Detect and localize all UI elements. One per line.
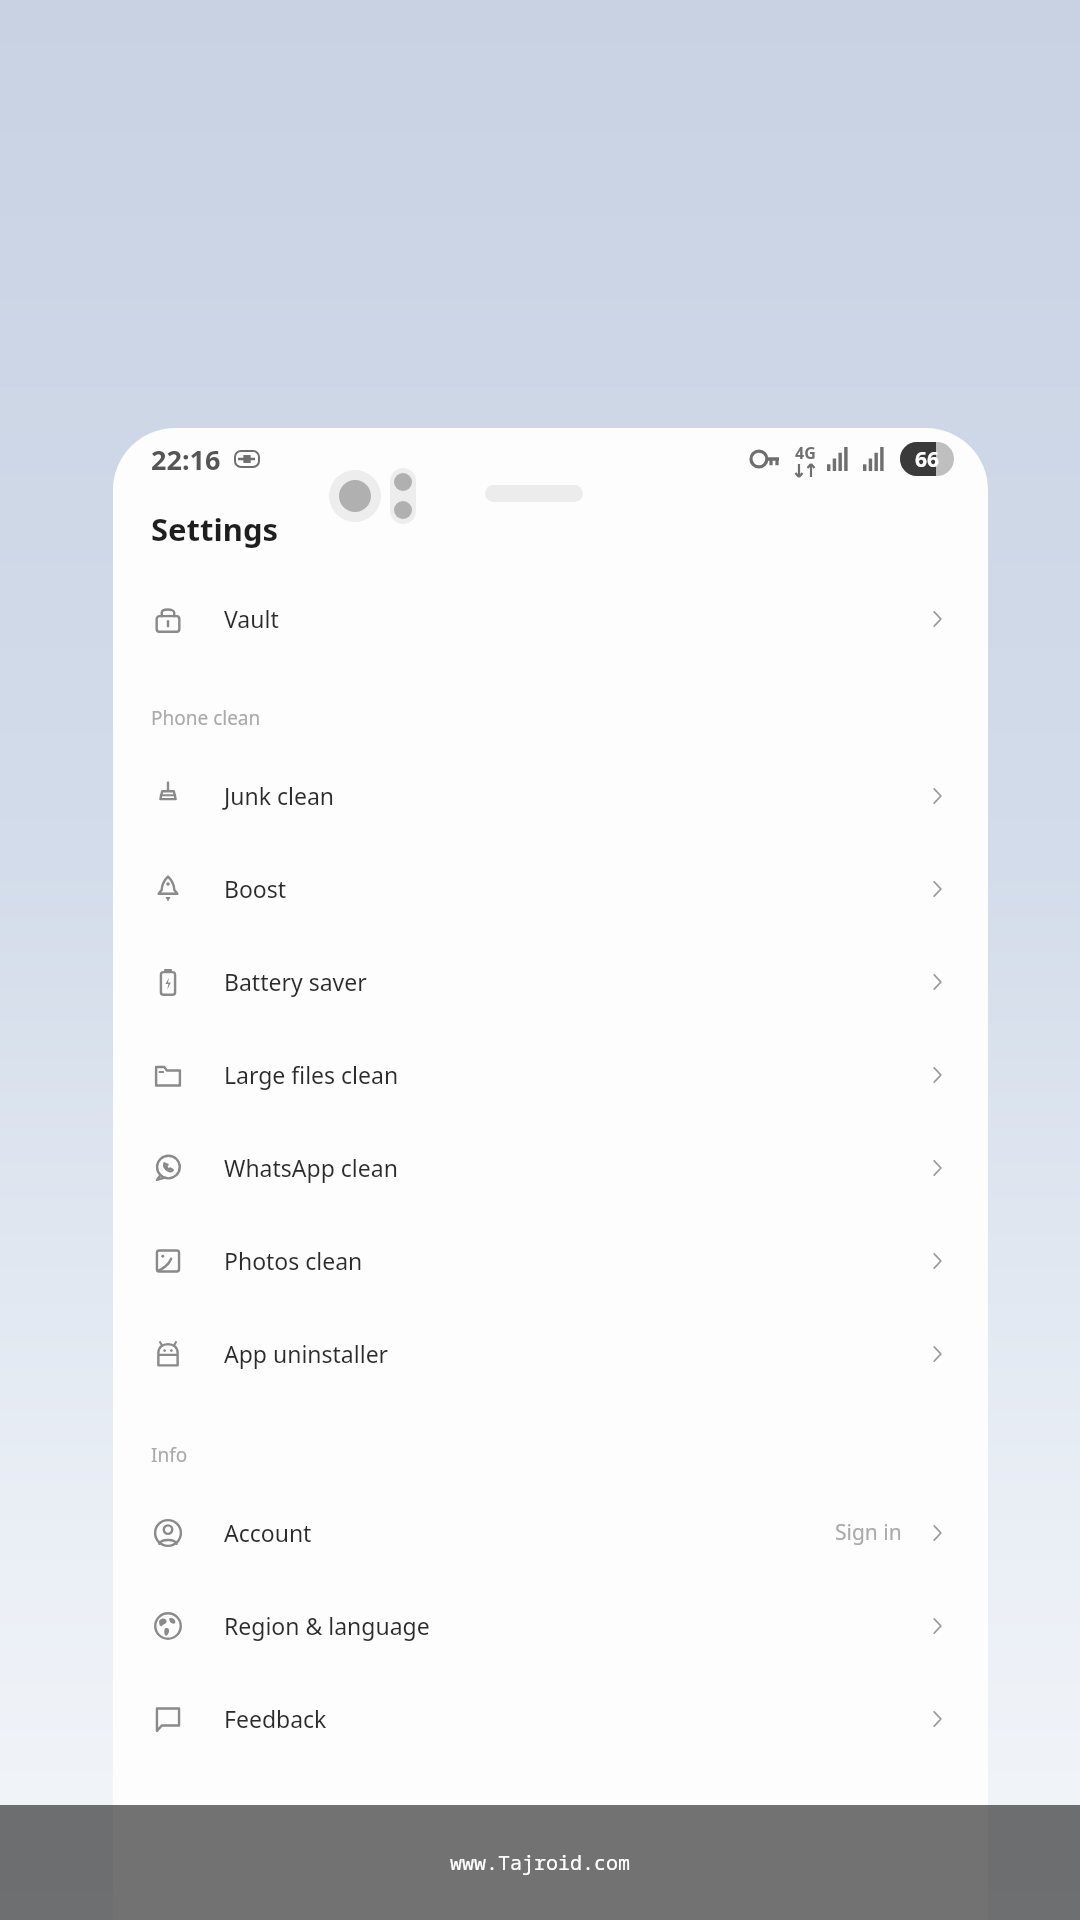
staticText: Info (151, 1442, 188, 1468)
button[interactable]: Account (113, 1486, 988, 1579)
button[interactable]: WhatsApp clean (113, 1121, 988, 1214)
button[interactable]: Boost (113, 842, 988, 935)
staticText: Vault (224, 603, 279, 634)
staticText: Feedback (224, 1703, 327, 1734)
staticText: Settings (151, 508, 279, 550)
staticText: Region & language (224, 1610, 430, 1641)
button[interactable]: Battery saver (113, 935, 988, 1028)
staticText: 22:16 (151, 441, 221, 478)
staticText: Sign in (835, 1518, 902, 1547)
staticText: Large files clean (224, 1059, 399, 1090)
staticText: Photos clean (224, 1245, 363, 1276)
staticText: Battery saver (224, 966, 367, 997)
staticText: Boost (224, 873, 287, 904)
staticText: www.Tajroid.com (450, 1849, 630, 1876)
staticText: 4G (795, 442, 816, 464)
button[interactable]: Vault (113, 572, 988, 665)
staticText: Junk clean (224, 780, 335, 811)
staticText: Account (224, 1517, 312, 1548)
button[interactable]: Region & language (113, 1579, 988, 1672)
staticText: WhatsApp clean (224, 1152, 398, 1183)
button[interactable]: Large files clean (113, 1028, 988, 1121)
staticText: Phone clean (151, 705, 261, 731)
button[interactable]: Photos clean (113, 1214, 988, 1307)
staticText: 66 (915, 445, 940, 474)
button[interactable]: Feedback (113, 1672, 988, 1765)
button[interactable]: App uninstaller (113, 1307, 988, 1400)
button[interactable]: Junk clean (113, 749, 988, 842)
staticText: App uninstaller (224, 1338, 389, 1369)
